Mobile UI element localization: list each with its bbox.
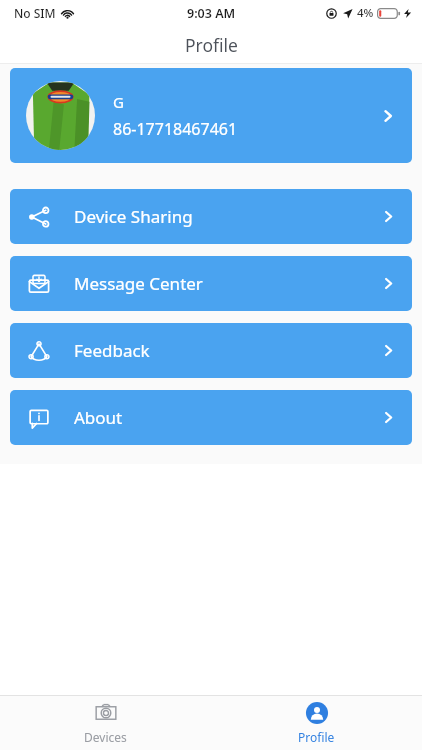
staticText: Message Center — [74, 272, 203, 295]
staticText: Feedback — [74, 339, 150, 362]
staticText: Devices — [84, 729, 127, 745]
staticText: G — [113, 92, 124, 112]
button[interactable]: Feedback — [10, 323, 412, 378]
staticText: 86-17718467461 — [113, 118, 238, 140]
staticText: 9:03 AM — [187, 5, 236, 22]
button[interactable]: G — [10, 68, 412, 163]
staticText: Device Sharing — [74, 205, 193, 228]
staticText: About — [74, 406, 123, 429]
button[interactable]: Devices — [0, 696, 211, 750]
button[interactable]: Device Sharing — [10, 189, 412, 244]
staticText: Profile — [185, 33, 238, 57]
button[interactable]: Message Center — [10, 256, 412, 311]
staticText: 4% — [357, 5, 374, 21]
button[interactable]: Profile — [211, 696, 422, 750]
button[interactable]: About — [10, 390, 412, 445]
staticText: Profile — [298, 729, 335, 745]
staticText: No SIM — [14, 5, 56, 21]
